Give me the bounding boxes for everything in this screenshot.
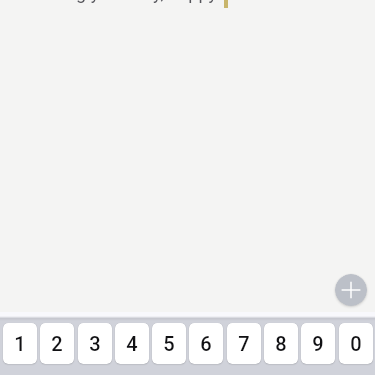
staticText: 1 [14,332,26,355]
staticText: 9 [312,332,324,355]
button[interactable]: 5 [152,323,186,364]
staticText: 5 [163,332,175,355]
button[interactable]: 0 [339,323,373,364]
staticText: 2 [51,332,63,355]
staticText: 6 [200,332,212,355]
button[interactable]: 8 [264,323,298,364]
button[interactable]: 4 [115,323,149,364]
button[interactable]: 3 [78,323,112,364]
staticText: Coming your way, happy [24,0,217,3]
staticText: 4 [126,332,138,355]
button[interactable]: 7 [227,323,261,364]
button[interactable]: 1 [3,323,37,364]
button[interactable]: 6 [189,323,223,364]
staticText: 8 [275,332,287,355]
button[interactable]: 2 [40,323,74,364]
staticText: 3 [89,332,101,355]
staticText: 0 [350,332,362,355]
button[interactable]: Add [335,274,367,306]
staticText: 7 [238,332,250,355]
button[interactable]: 9 [301,323,335,364]
